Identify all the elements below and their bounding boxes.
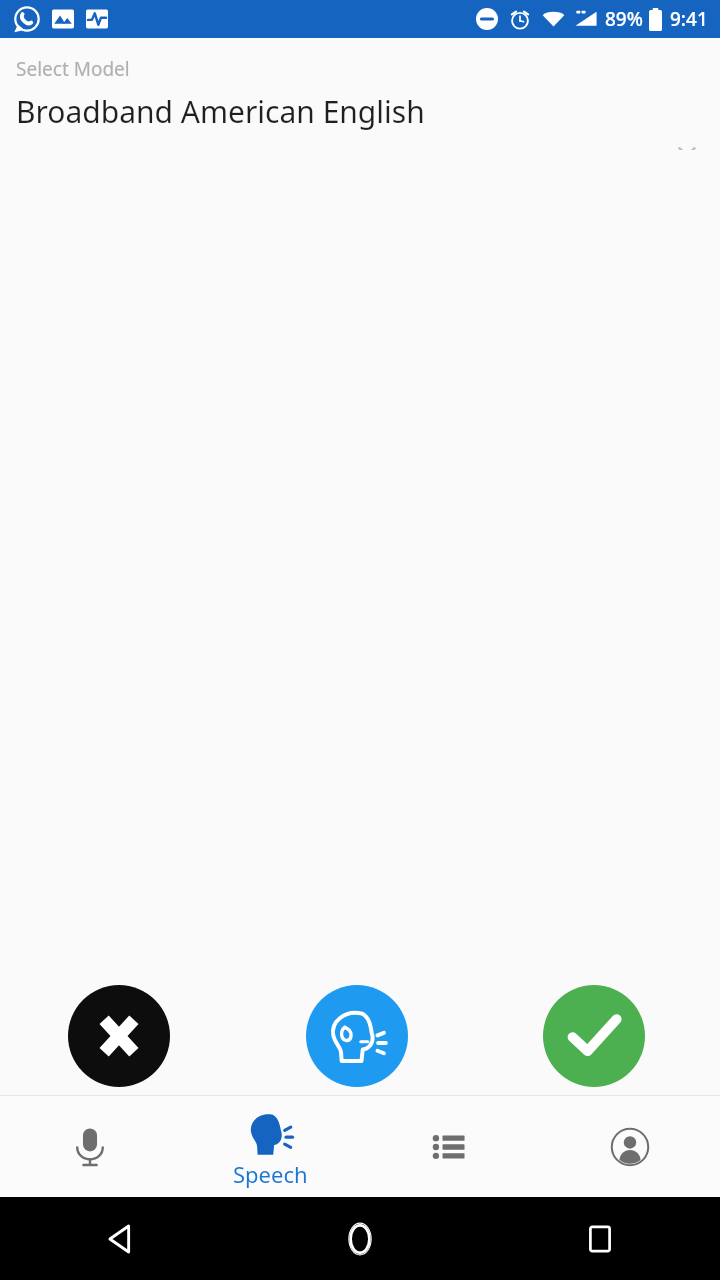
button[interactable]: Back — [0, 1197, 240, 1280]
staticText: 9:41 — [670, 6, 708, 32]
staticText: Select Model — [16, 56, 130, 82]
staticText: 89% — [605, 6, 643, 32]
staticText: Speech — [233, 1159, 308, 1189]
button[interactable]: Cancel — [68, 985, 170, 1087]
button[interactable]: Speak — [306, 985, 408, 1087]
button[interactable]: Profile — [540, 1096, 720, 1197]
button[interactable]: Speech — [180, 1096, 360, 1197]
staticText: Broadband American English — [16, 91, 425, 132]
button[interactable]: Accept — [543, 985, 645, 1087]
button[interactable]: Select Model — [0, 38, 720, 150]
button[interactable]: List — [360, 1096, 540, 1197]
button[interactable]: Microphone — [0, 1096, 180, 1197]
button[interactable]: Home — [240, 1197, 480, 1280]
button[interactable]: Recents — [480, 1197, 720, 1280]
